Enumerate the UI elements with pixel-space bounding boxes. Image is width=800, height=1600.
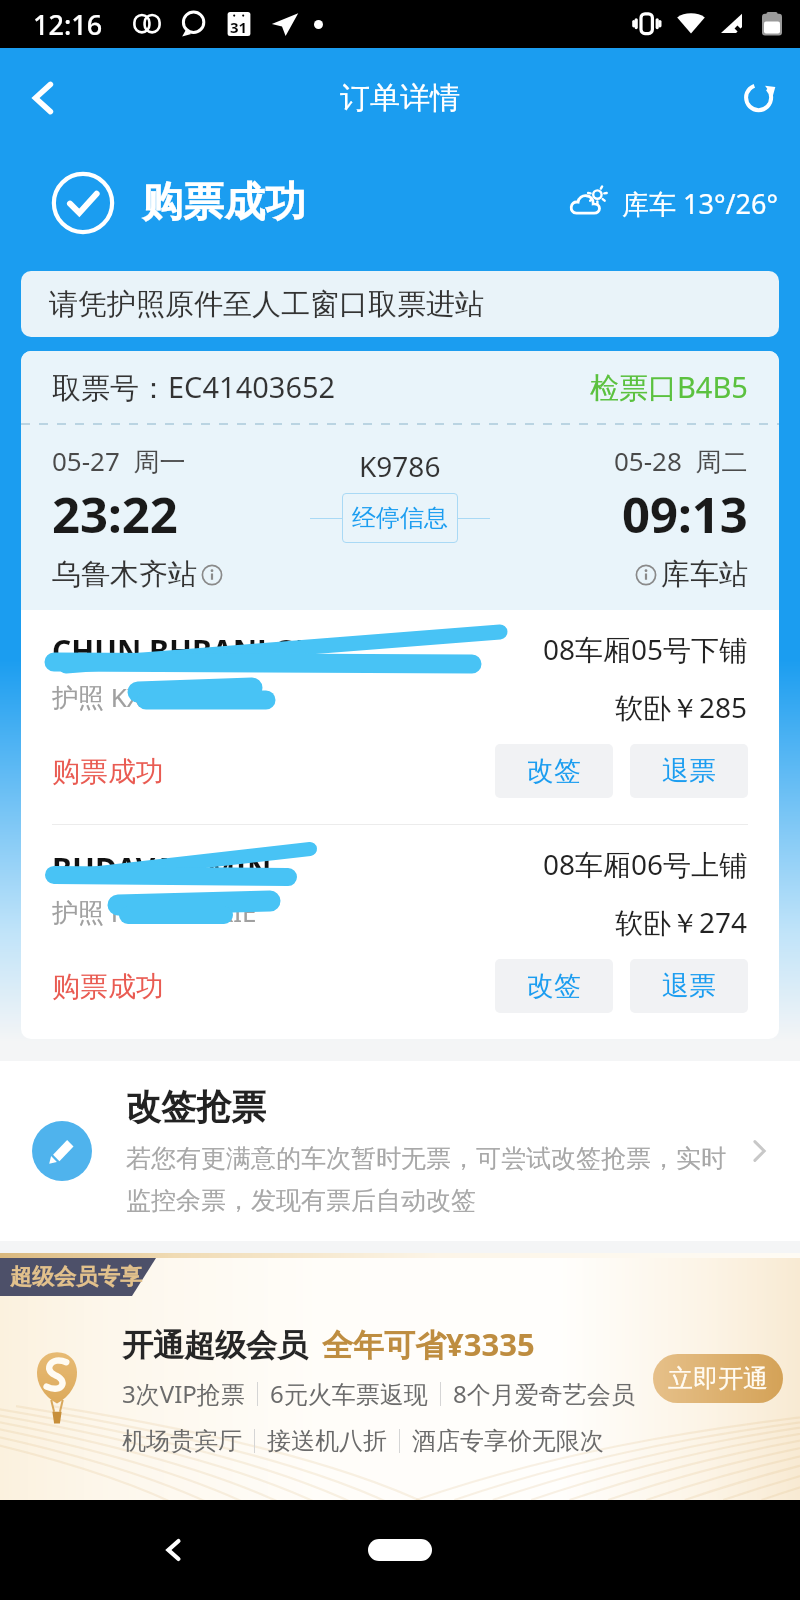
staticText: 退票	[662, 969, 716, 1003]
staticText: 护照 KZXXXXXXIE	[52, 894, 257, 930]
staticText: 05-27 周一	[52, 443, 186, 479]
staticText: 改签	[527, 754, 581, 788]
staticText: 开通超级会员	[122, 1326, 308, 1365]
staticText: 软卧￥285	[615, 688, 748, 726]
staticText: K9786	[359, 447, 441, 485]
button[interactable]: Back	[12, 65, 78, 131]
staticText: 退票	[662, 754, 716, 788]
staticText: 护照 KXXXXXOH	[52, 679, 243, 715]
staticText: 接送机八折	[267, 1426, 387, 1456]
button[interactable]: 退票	[630, 959, 748, 1013]
staticText: 库车 13°/26°	[622, 185, 778, 222]
button[interactable]: 改签	[495, 959, 613, 1013]
staticText: 超级会员专享	[10, 1263, 142, 1291]
staticText: 8个月爱奇艺会员	[453, 1377, 635, 1410]
staticText: 31	[230, 17, 248, 37]
staticText: 6元火车票返现	[270, 1377, 428, 1410]
staticText: 购票成功	[52, 969, 164, 1004]
button[interactable]: 退票	[630, 744, 748, 798]
button[interactable]: Back	[148, 1524, 200, 1576]
staticText: CHUN BHBANLGL NNAVOKARINA	[52, 630, 543, 676]
staticText: 改签抢票	[126, 1085, 266, 1129]
staticText: 若您有更满意的车次暂时无票，可尝试改签抢票，实时 监控余票，发现有票后自动改签	[126, 1143, 726, 1217]
staticText: BHDAVA S MIN	[52, 848, 272, 889]
staticText: 3次VIP抢票	[122, 1377, 245, 1410]
staticText: 12:16	[33, 6, 103, 43]
staticText: 23:22	[52, 481, 178, 548]
staticText: 08车厢06号上铺	[543, 845, 748, 883]
button[interactable]: Home	[368, 1539, 432, 1561]
button[interactable]: 改签	[495, 744, 613, 798]
button[interactable]: 改签抢票	[0, 1061, 800, 1241]
staticText: 订单详情	[340, 79, 460, 117]
staticText: 乌鲁木齐站	[52, 556, 197, 593]
staticText: 取票号：EC41403652	[52, 367, 336, 407]
button[interactable]: Refresh	[726, 65, 792, 131]
staticText: 经停信息	[352, 503, 448, 533]
button[interactable]: 请凭护照原件至人工窗口取票进站	[21, 271, 779, 337]
staticText: 库车站	[661, 556, 748, 593]
staticText: 购票成功	[142, 177, 306, 229]
staticText: 酒店专享价无限次	[412, 1426, 604, 1456]
staticText: 立即开通	[668, 1363, 768, 1394]
staticText: 检票口B4B5	[590, 367, 748, 407]
staticText: 05-28 周二	[614, 443, 748, 479]
staticText: 软卧￥274	[615, 903, 748, 941]
staticText: 全年可省¥3335	[322, 1323, 535, 1365]
staticText: 08车厢05号下铺	[543, 630, 748, 668]
button[interactable]: 立即开通	[653, 1354, 783, 1403]
staticText: 09:13	[622, 481, 748, 548]
staticText: 改签	[527, 969, 581, 1003]
staticText: 购票成功	[52, 754, 164, 789]
staticText: 机场贵宾厅	[122, 1426, 242, 1456]
button[interactable]: 经停信息	[342, 493, 458, 543]
staticText: 请凭护照原件至人工窗口取票进站	[49, 286, 484, 323]
